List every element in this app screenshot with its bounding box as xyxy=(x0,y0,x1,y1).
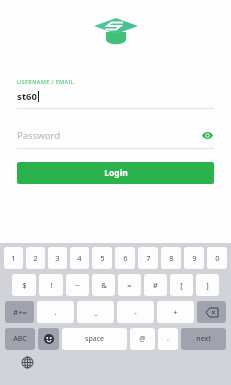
button[interactable]: ] xyxy=(196,274,219,296)
button[interactable]: space xyxy=(62,328,127,350)
button[interactable]: 6 xyxy=(115,247,135,269)
staticText: 9 xyxy=(192,253,197,263)
staticText: 4 xyxy=(77,253,82,263)
button[interactable]: ! xyxy=(39,274,63,296)
staticText: ~ xyxy=(75,280,80,290)
staticText: ] xyxy=(206,280,209,290)
button[interactable]: Backspace xyxy=(197,301,226,323)
button[interactable]: Emoji xyxy=(38,328,59,350)
button[interactable]: [ xyxy=(170,274,193,296)
button[interactable]: Change keyboard language xyxy=(19,354,35,370)
staticText: Password xyxy=(17,129,60,142)
button[interactable]: #+= xyxy=(5,301,34,323)
button[interactable]: 0 xyxy=(207,247,227,269)
button[interactable]: next xyxy=(181,328,226,350)
staticText: 6 xyxy=(123,253,128,263)
staticText: + xyxy=(173,307,178,317)
button[interactable]: 9 xyxy=(184,247,204,269)
button[interactable]: 2 xyxy=(26,247,45,269)
button[interactable]: - xyxy=(117,301,154,323)
button[interactable]: ~ xyxy=(66,274,89,296)
staticText: . xyxy=(167,334,169,344)
button[interactable]: ABC xyxy=(5,328,35,350)
staticText: st60 xyxy=(17,90,37,103)
staticText: 2 xyxy=(33,253,38,263)
button[interactable]: @ xyxy=(130,328,155,350)
button[interactable]: $ xyxy=(12,274,36,296)
button[interactable]: # xyxy=(144,274,167,296)
staticText: & xyxy=(101,280,107,290)
staticText: [ xyxy=(180,280,183,290)
button[interactable]: . xyxy=(158,328,178,350)
button[interactable]: _ xyxy=(77,301,114,323)
button[interactable]: Password xyxy=(17,128,214,142)
button[interactable]: + xyxy=(157,301,194,323)
button[interactable]: Show password xyxy=(200,128,214,142)
staticText: 3 xyxy=(55,253,60,263)
staticText: 0 xyxy=(215,253,220,263)
staticText: USERNAME / EMAIL xyxy=(17,78,74,86)
staticText: # xyxy=(153,280,158,290)
staticText: next xyxy=(196,334,211,344)
button[interactable]: USERNAME / EMAIL xyxy=(17,78,214,109)
staticText: - xyxy=(134,307,137,317)
staticText: . xyxy=(54,307,57,317)
button[interactable]: 4 xyxy=(70,247,89,269)
staticText: ! xyxy=(50,280,53,290)
button[interactable]: & xyxy=(92,274,115,296)
button[interactable]: 8 xyxy=(161,247,181,269)
staticText: $ xyxy=(22,280,27,290)
button[interactable]: 5 xyxy=(92,247,112,269)
staticText: 8 xyxy=(169,253,174,263)
staticText: Login xyxy=(104,167,128,179)
button[interactable]: 7 xyxy=(138,247,158,269)
staticText: = xyxy=(127,280,132,290)
staticText: #+= xyxy=(13,307,27,317)
button[interactable]: . xyxy=(37,301,74,323)
button[interactable]: = xyxy=(118,274,141,296)
staticText: @ xyxy=(139,334,146,344)
staticText: 5 xyxy=(100,253,105,263)
staticText: 1 xyxy=(11,253,16,263)
staticText: 7 xyxy=(146,253,151,263)
staticText: space xyxy=(85,334,104,344)
staticText: _ xyxy=(94,307,98,317)
button[interactable]: 3 xyxy=(48,247,67,269)
button[interactable]: Login xyxy=(17,162,214,184)
button[interactable]: 1 xyxy=(4,247,23,269)
staticText: ABC xyxy=(13,334,27,344)
